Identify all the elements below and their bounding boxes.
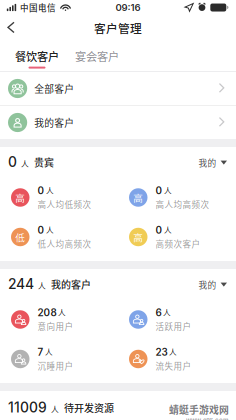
- staticText: 中国电信: [20, 1, 56, 14]
- staticText: 人: [45, 347, 53, 358]
- button[interactable]: Back: [0, 14, 25, 42]
- staticText: 人: [46, 225, 54, 236]
- button[interactable]: 我的: [199, 278, 227, 292]
- staticText: 活跃用户: [155, 320, 191, 332]
- staticText: 高: [133, 230, 143, 244]
- staticText: 人: [164, 185, 172, 196]
- staticText: 我的客户: [34, 115, 74, 130]
- staticText: 高: [15, 190, 25, 204]
- button[interactable]: 餐饮客户: [7, 42, 67, 71]
- button[interactable]: 高: [118, 177, 236, 216]
- staticText: 流失用户: [155, 359, 191, 372]
- staticText: 6: [155, 307, 161, 318]
- button[interactable]: 宴会客户: [67, 42, 127, 71]
- button[interactable]: 全部客户: [0, 72, 236, 105]
- staticText: 宴会客户: [75, 48, 119, 64]
- staticText: 0: [37, 224, 44, 236]
- staticText: 全部客户: [34, 81, 74, 96]
- staticText: 高人均高频次: [155, 198, 209, 210]
- button[interactable]: 高: [0, 177, 118, 216]
- staticText: 人: [163, 307, 171, 318]
- staticText: 沉睡用户: [37, 359, 73, 372]
- staticText: 待开发资源: [64, 400, 114, 415]
- button[interactable]: 高: [118, 216, 236, 256]
- button[interactable]: 208: [0, 299, 118, 338]
- staticText: 人: [164, 225, 172, 236]
- staticText: 人: [51, 404, 59, 415]
- staticText: 贵宾: [34, 155, 54, 169]
- staticText: 0: [155, 224, 162, 236]
- staticText: 0: [155, 185, 162, 196]
- staticText: 人: [38, 280, 46, 291]
- staticText: 7: [37, 346, 43, 358]
- staticText: www.qt6.com: [186, 417, 229, 420]
- staticText: 餐饮客户: [15, 48, 59, 64]
- button[interactable]: 低: [0, 216, 118, 256]
- staticText: 我的客户: [51, 277, 91, 291]
- button[interactable]: 我的: [199, 156, 227, 170]
- staticText: 人: [46, 185, 54, 196]
- staticText: 208: [37, 307, 56, 318]
- staticText: 0: [37, 185, 44, 196]
- staticText: 11009: [8, 399, 47, 416]
- staticText: 客户管理: [94, 19, 142, 36]
- staticText: 高: [133, 190, 143, 204]
- staticText: 低人均高频次: [37, 237, 91, 250]
- staticText: 23: [155, 346, 167, 358]
- staticText: 0: [8, 154, 17, 170]
- staticText: 09:16: [115, 2, 140, 13]
- staticText: 高频次客户: [155, 237, 200, 250]
- staticText: 人: [169, 347, 177, 358]
- staticText: 低: [15, 230, 25, 244]
- button[interactable]: 23: [118, 338, 236, 378]
- staticText: 人: [58, 307, 66, 318]
- button[interactable]: 我的客户: [0, 106, 236, 139]
- staticText: 我的: [199, 278, 217, 291]
- staticText: 244: [8, 276, 34, 292]
- staticText: 蜻蜓手游戏网: [169, 402, 229, 417]
- staticText: 人: [21, 158, 29, 169]
- button[interactable]: 6: [118, 299, 236, 338]
- staticText: 我的: [199, 156, 217, 169]
- button[interactable]: 7: [0, 338, 118, 378]
- staticText: 意向用户: [37, 320, 73, 332]
- staticText: 高人均低频次: [37, 198, 91, 210]
